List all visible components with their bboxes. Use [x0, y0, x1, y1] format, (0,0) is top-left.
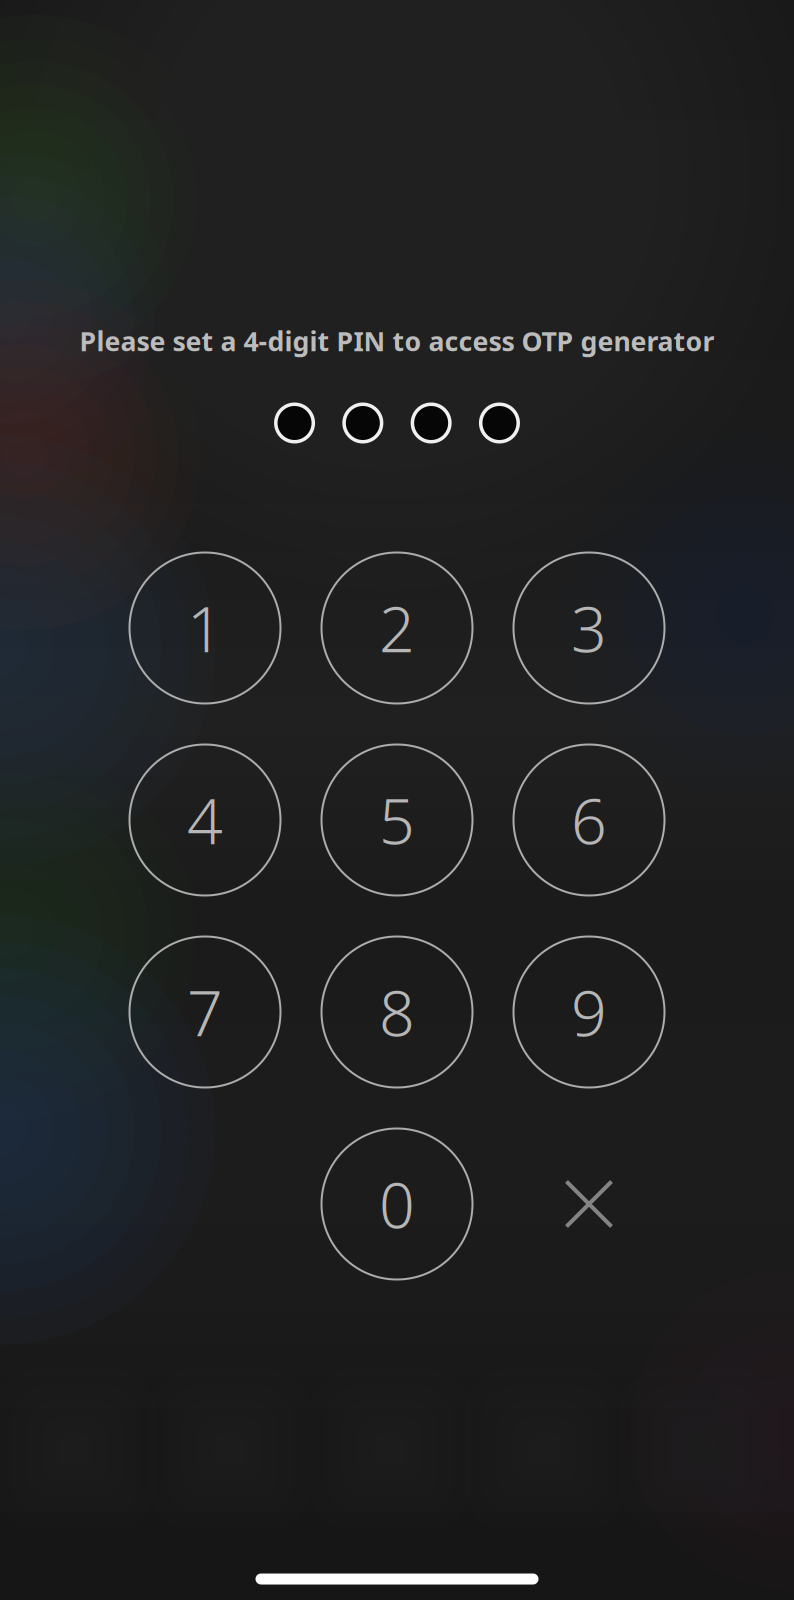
staticText: 1 [187, 586, 223, 670]
button[interactable]: 4 [129, 744, 280, 895]
button[interactable]: 0 [321, 1128, 472, 1279]
button[interactable]: 8 [321, 936, 472, 1087]
staticText: 0 [379, 1162, 415, 1246]
button[interactable]: Delete [513, 1128, 664, 1279]
button[interactable]: 7 [129, 936, 280, 1087]
staticText: 3 [571, 586, 607, 670]
staticText: 6 [571, 778, 607, 862]
button[interactable]: 2 [321, 552, 472, 703]
button[interactable]: 9 [513, 936, 664, 1087]
button[interactable]: 1 [129, 552, 280, 703]
staticText: 2 [379, 586, 415, 670]
button[interactable]: 6 [513, 744, 664, 895]
staticText: 4 [187, 778, 223, 862]
staticText: 5 [379, 778, 415, 862]
button[interactable]: 5 [321, 744, 472, 895]
staticText: 8 [379, 970, 415, 1054]
staticText: Please set a 4-digit PIN to access OTP g… [79, 323, 714, 359]
staticText: 9 [571, 970, 607, 1054]
staticText: 7 [187, 970, 223, 1054]
button[interactable]: 3 [513, 552, 664, 703]
